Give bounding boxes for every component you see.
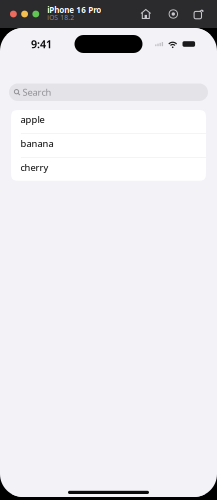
button[interactable]: Home xyxy=(141,9,151,19)
button[interactable]: Search xyxy=(9,83,208,101)
staticText: cherry xyxy=(21,161,49,174)
button[interactable]: apple xyxy=(11,110,206,133)
button[interactable]: Record screen xyxy=(169,9,178,19)
staticText: iPhone 16 Pro xyxy=(47,5,101,15)
staticText: Search xyxy=(22,86,51,98)
button[interactable]: banana xyxy=(11,134,206,157)
staticText: banana xyxy=(21,137,54,150)
staticText: iOS 18.2 xyxy=(47,13,74,22)
staticText: apple xyxy=(21,113,45,126)
button[interactable]: Share xyxy=(194,9,204,19)
button[interactable]: cherry xyxy=(11,158,206,181)
staticText: 9:41 xyxy=(31,37,52,51)
